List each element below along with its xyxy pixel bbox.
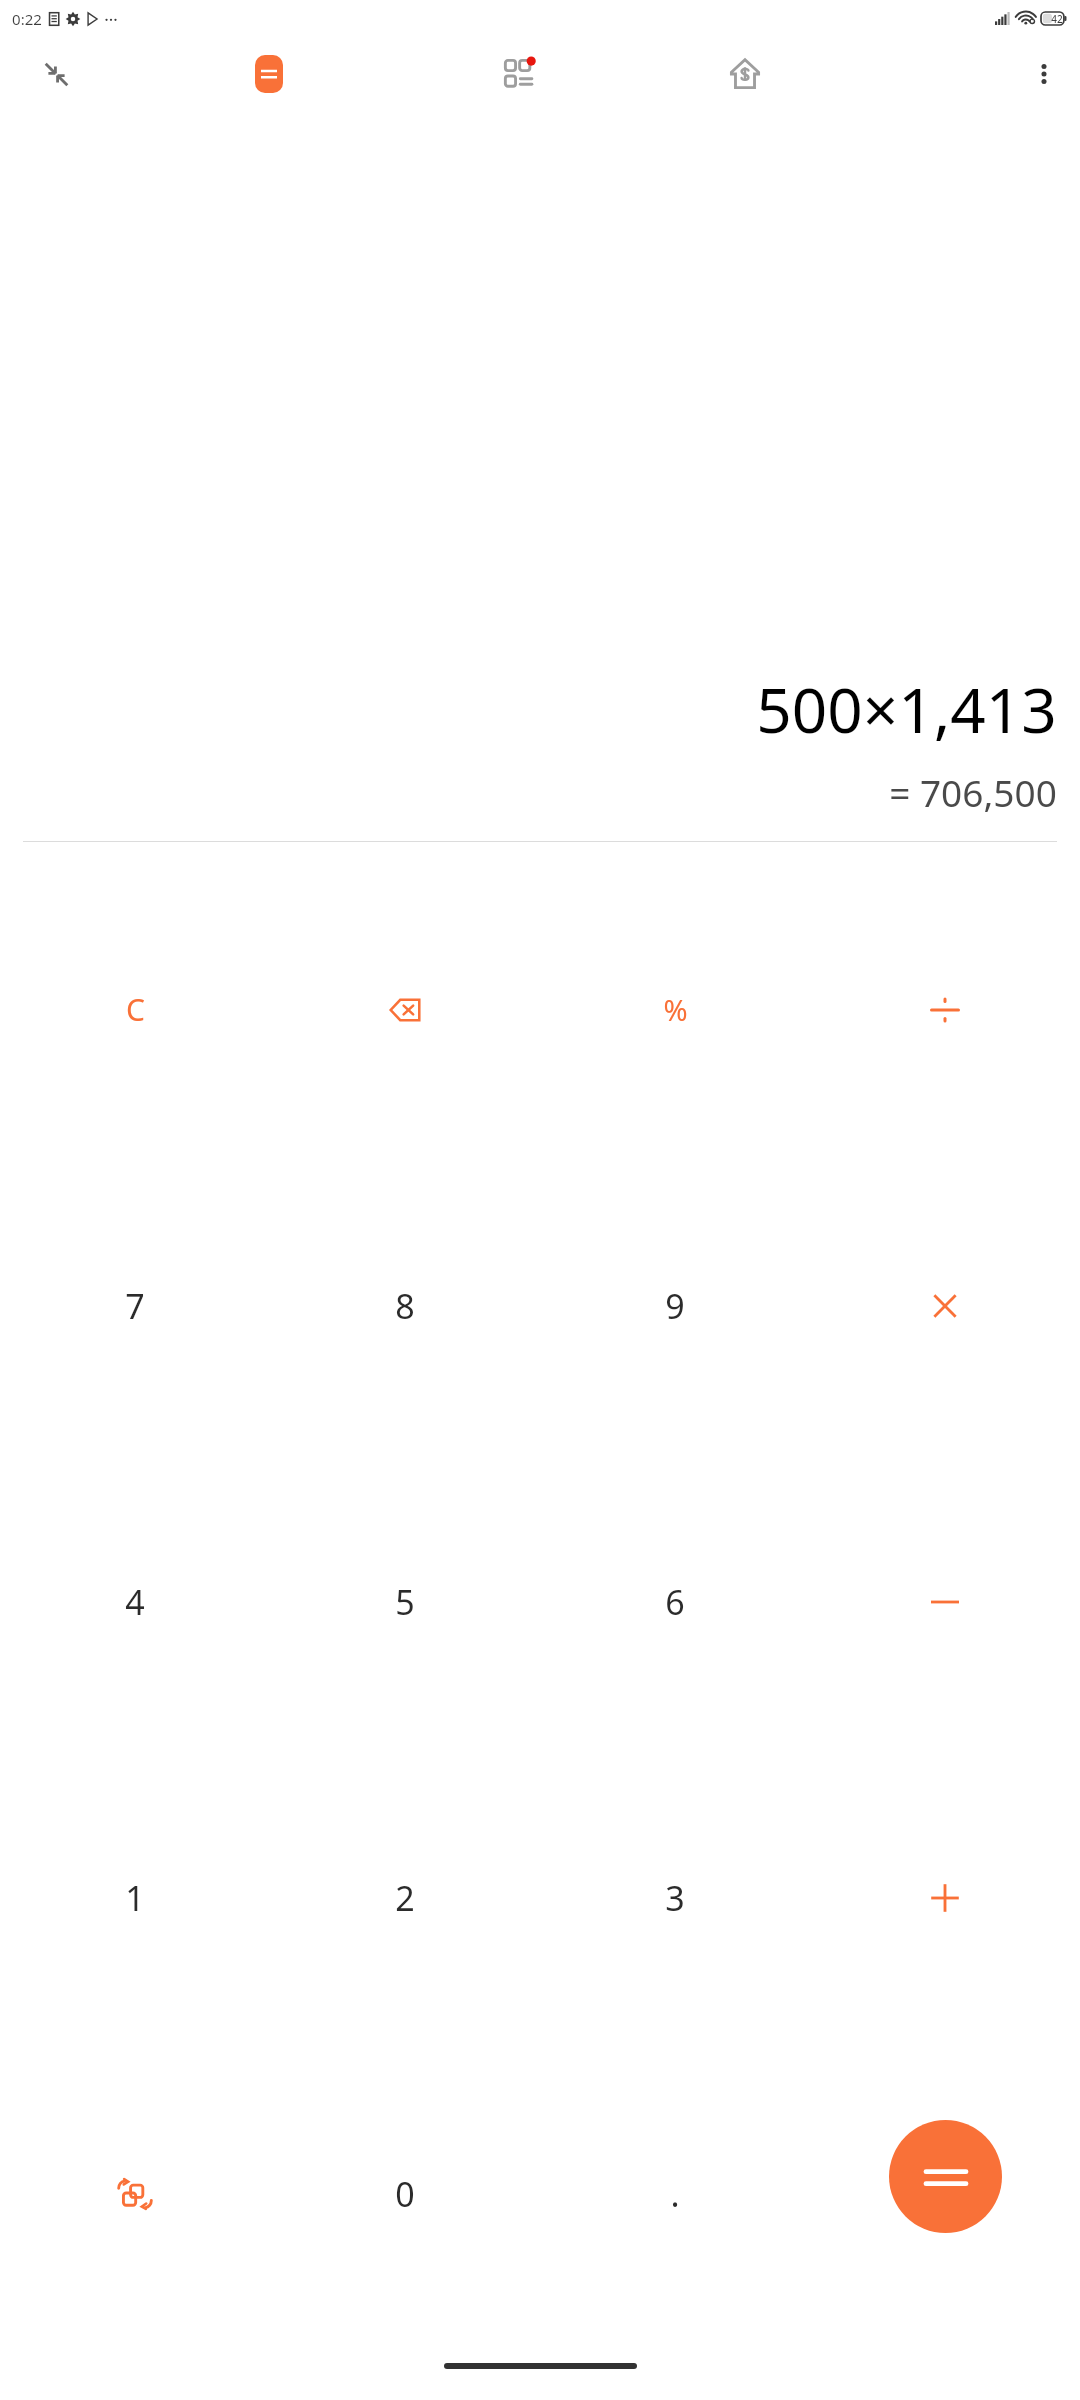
button[interactable] xyxy=(810,1454,1080,1750)
button[interactable]: 0 xyxy=(270,2046,540,2342)
button[interactable]: 7 xyxy=(0,1158,270,1454)
button[interactable]: 3 xyxy=(540,1750,810,2046)
button[interactable] xyxy=(270,861,540,1158)
button[interactable]: % xyxy=(540,861,810,1158)
staticText: 9 xyxy=(665,1283,685,1329)
button[interactable] xyxy=(810,1158,1080,1454)
staticText: . xyxy=(670,2171,680,2217)
button[interactable]: Equals xyxy=(889,2120,1002,2233)
staticText: 42 xyxy=(1051,12,1063,26)
staticText: 8 xyxy=(395,1283,415,1329)
button[interactable]: Mortgage calculator xyxy=(718,47,772,101)
button[interactable]: Calculator mode xyxy=(245,50,293,98)
button[interactable]: More options xyxy=(1020,50,1068,98)
staticText: 3 xyxy=(665,1875,685,1921)
staticText: C xyxy=(126,989,145,1030)
staticText: 0:22 xyxy=(12,9,42,29)
button[interactable]: 8 xyxy=(270,1158,540,1454)
button[interactable]: C xyxy=(0,861,270,1158)
staticText: 1 xyxy=(125,1875,145,1921)
staticText: 2 xyxy=(395,1875,415,1921)
staticText: = 706,500 xyxy=(889,767,1057,817)
staticText: 4 xyxy=(125,1579,145,1625)
staticText: 0 xyxy=(395,2171,415,2217)
staticText: % xyxy=(663,990,688,1029)
staticText: 7 xyxy=(125,1283,145,1329)
staticText: 5 xyxy=(395,1579,415,1625)
button[interactable]: 5 xyxy=(270,1454,540,1750)
button[interactable] xyxy=(810,1750,1080,2046)
button[interactable]: Unit converter xyxy=(0,2046,270,2342)
button[interactable]: All tools xyxy=(495,48,547,100)
staticText: 6 xyxy=(665,1579,685,1625)
staticText: 500×1,413 xyxy=(756,667,1057,751)
button[interactable]: 2 xyxy=(270,1750,540,2046)
button[interactable]: 1 xyxy=(0,1750,270,2046)
button[interactable]: 9 xyxy=(540,1158,810,1454)
button[interactable]: 6 xyxy=(540,1454,810,1750)
button[interactable]: Collapse xyxy=(32,50,80,98)
button[interactable]: 4 xyxy=(0,1454,270,1750)
button[interactable] xyxy=(810,861,1080,1158)
